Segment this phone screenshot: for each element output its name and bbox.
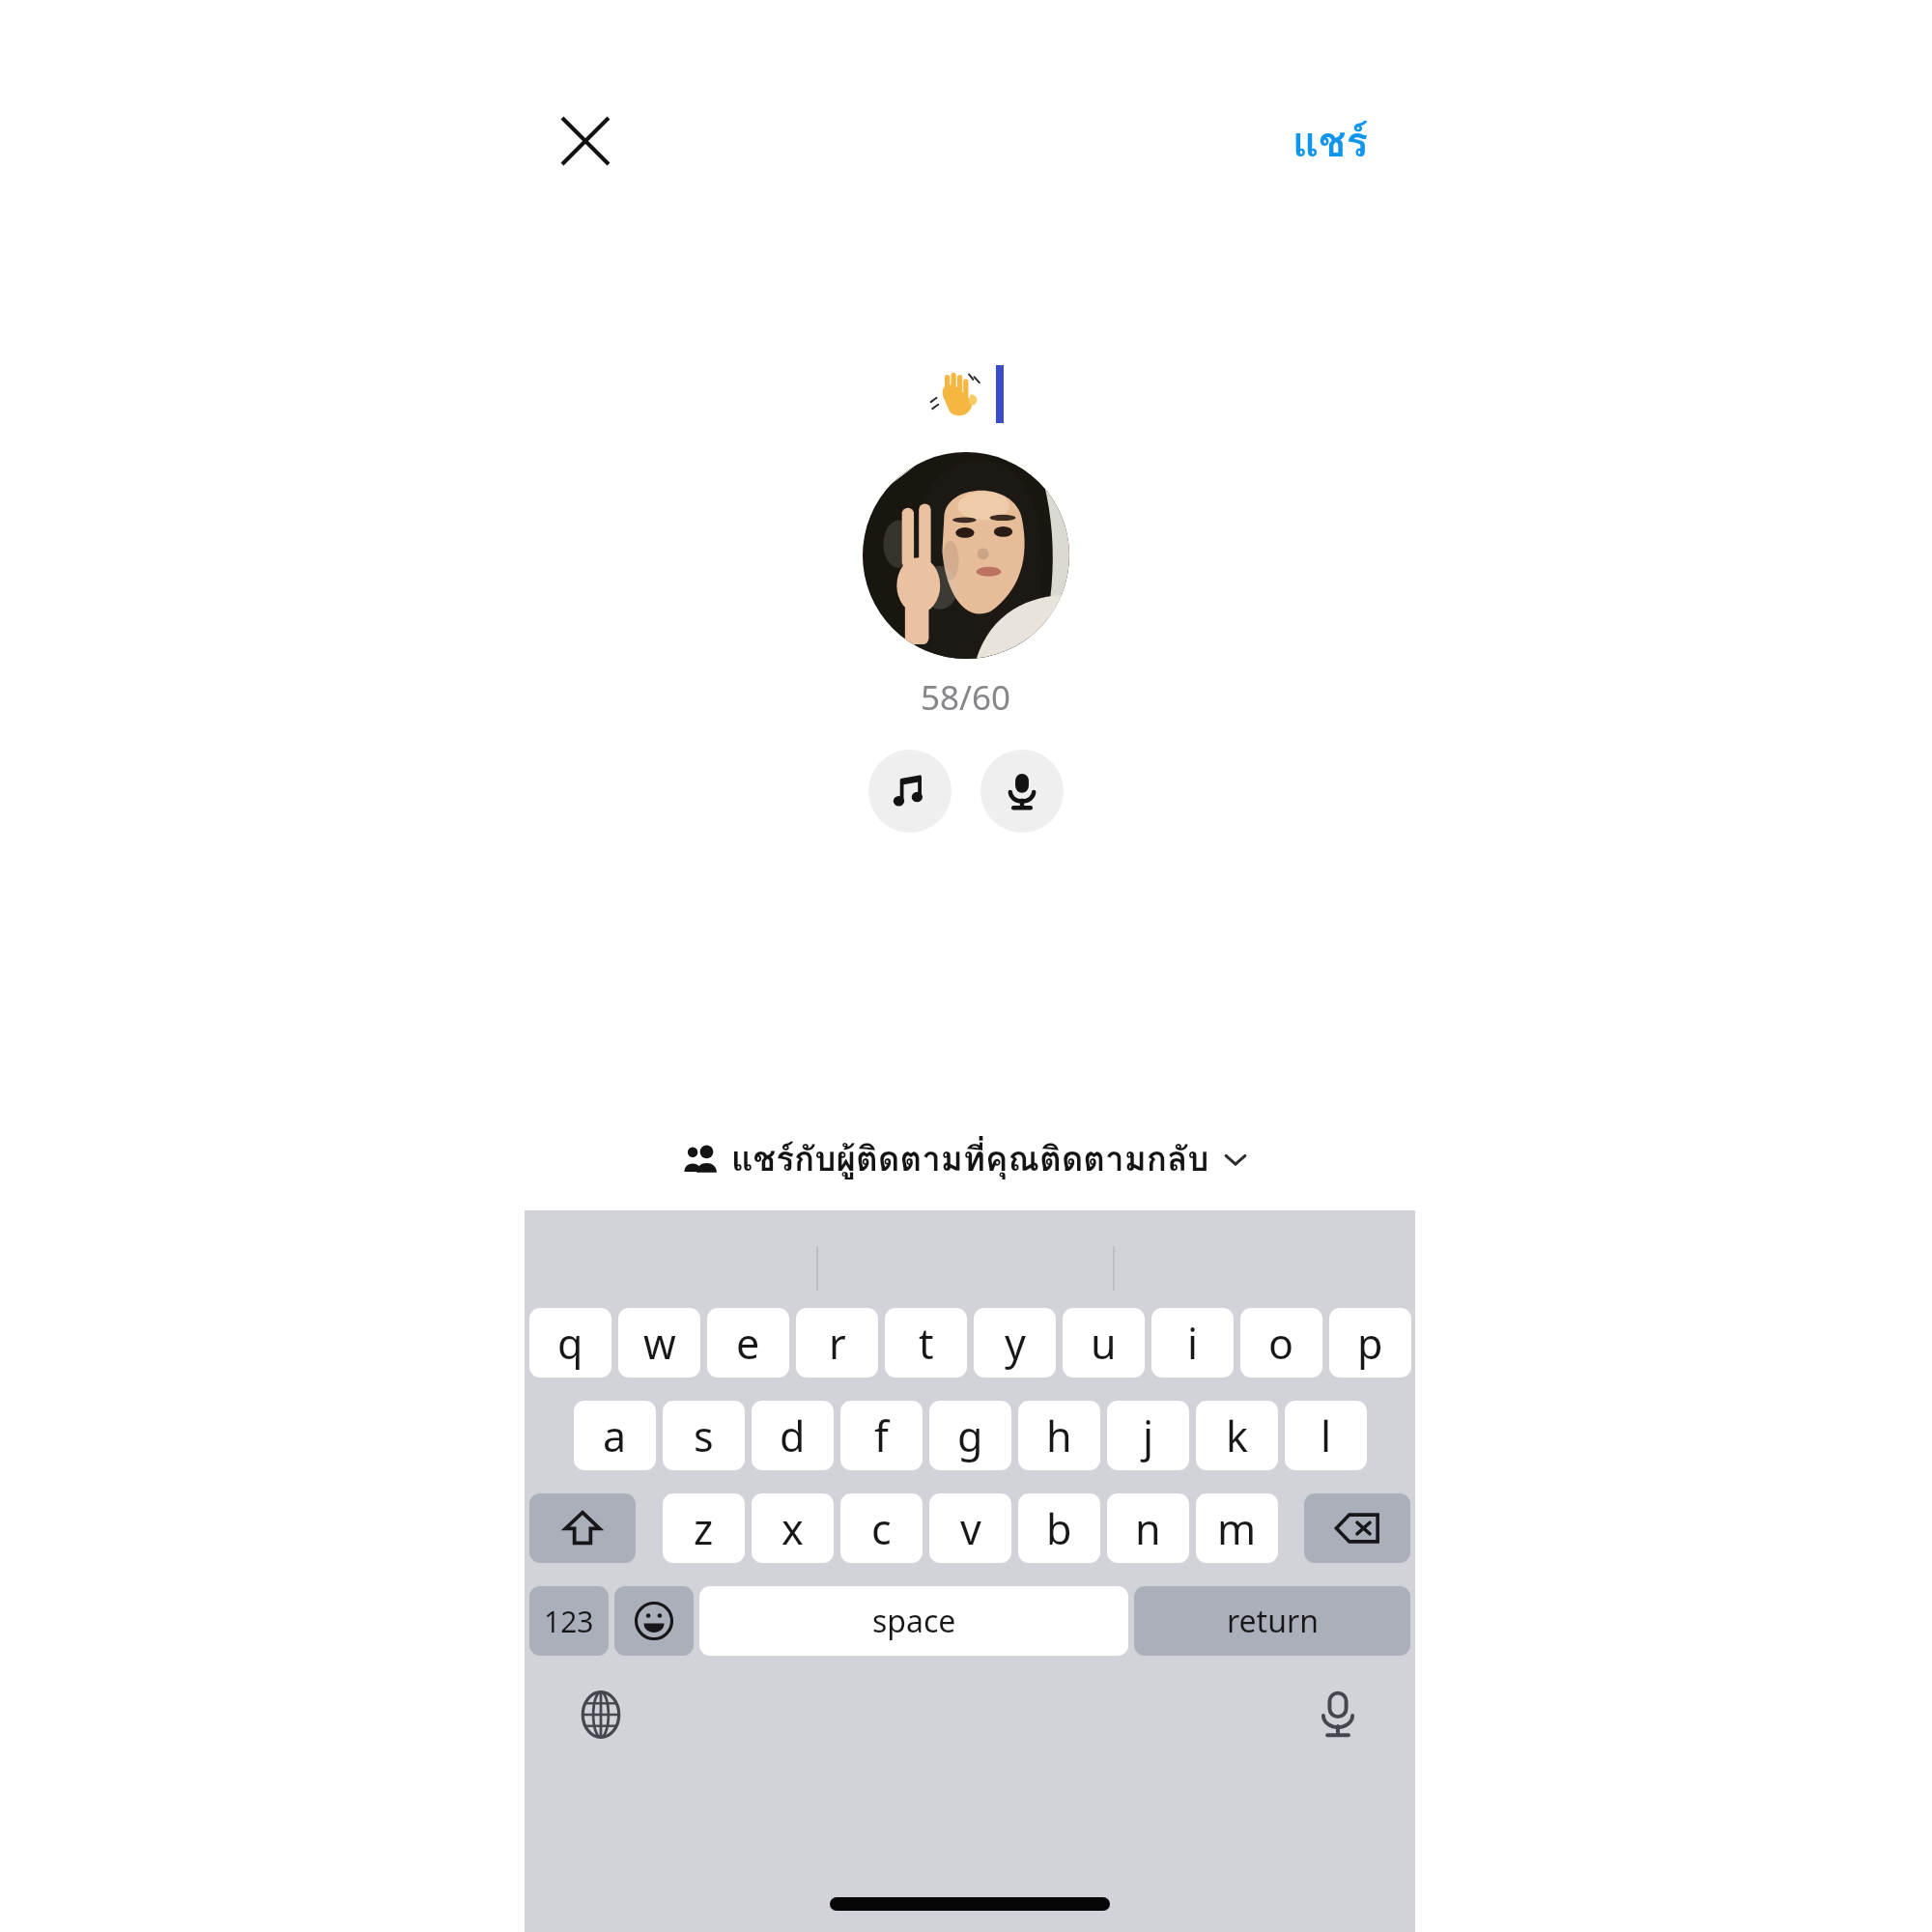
button[interactable] [893, 348, 1039, 440]
staticText: return [1227, 1600, 1319, 1642]
staticText: j [1143, 1407, 1154, 1464]
button[interactable]: b [1018, 1493, 1100, 1563]
button[interactable]: a [574, 1401, 656, 1470]
button[interactable]: Record voice [980, 750, 1064, 833]
button[interactable]: w [618, 1308, 700, 1378]
staticText: c [871, 1500, 892, 1557]
button[interactable]: 123 [529, 1586, 609, 1656]
button[interactable]: q [529, 1308, 611, 1378]
staticText: g [957, 1407, 983, 1464]
staticText: f [874, 1407, 889, 1464]
button[interactable]: d [752, 1401, 834, 1470]
button[interactable]: o [1240, 1308, 1322, 1378]
staticText: แชร์กับผู้ติดตามที่คุณติดตามกลับ [731, 1132, 1209, 1186]
button[interactable]: c [840, 1493, 923, 1563]
button[interactable]: p [1329, 1308, 1411, 1378]
staticText: y [1005, 1315, 1026, 1372]
button[interactable]: แชร์กับผู้ติดตามที่คุณติดตามกลับ [39, 1132, 1893, 1186]
staticText: s [694, 1407, 714, 1464]
button[interactable]: x [752, 1493, 834, 1563]
button[interactable]: s [663, 1401, 745, 1470]
button[interactable]: Backspace [1304, 1493, 1410, 1563]
button[interactable]: Emoji [614, 1586, 694, 1656]
button[interactable]: Add music [868, 750, 952, 833]
button[interactable]: t [885, 1308, 967, 1378]
staticText: z [694, 1500, 714, 1557]
staticText: 123 [544, 1602, 594, 1641]
button[interactable]: Dictation [1300, 1677, 1376, 1752]
staticText: a [603, 1407, 627, 1464]
staticText: h [1046, 1407, 1072, 1464]
button[interactable]: m [1196, 1493, 1278, 1563]
staticText: i [1187, 1315, 1199, 1372]
staticText: w [643, 1315, 676, 1372]
button[interactable]: u [1063, 1308, 1145, 1378]
staticText: d [780, 1407, 806, 1464]
button[interactable]: v [929, 1493, 1011, 1563]
button[interactable]: Close [551, 106, 620, 176]
button[interactable]: Shift [529, 1493, 636, 1563]
staticText: v [960, 1500, 981, 1557]
staticText: space [872, 1600, 956, 1642]
staticText: 58/60 [921, 674, 1011, 721]
staticText: k [1226, 1407, 1248, 1464]
staticText: m [1217, 1500, 1257, 1557]
button[interactable]: h [1018, 1401, 1100, 1470]
staticText: e [736, 1315, 760, 1372]
button[interactable]: space [699, 1586, 1128, 1656]
staticText: u [1091, 1315, 1117, 1372]
button[interactable]: แชร์ [1293, 110, 1369, 175]
button[interactable]: j [1107, 1401, 1189, 1470]
staticText: แชร์ [1293, 110, 1369, 175]
staticText: x [781, 1500, 804, 1557]
staticText: p [1357, 1315, 1383, 1372]
button[interactable]: g [929, 1401, 1011, 1470]
button[interactable]: k [1196, 1401, 1278, 1470]
button[interactable]: return [1134, 1586, 1410, 1656]
staticText: b [1046, 1500, 1072, 1557]
button[interactable]: r [796, 1308, 878, 1378]
staticText: t [919, 1315, 934, 1372]
button[interactable]: e [707, 1308, 789, 1378]
button[interactable]: y [974, 1308, 1056, 1378]
staticText: l [1321, 1407, 1332, 1464]
button[interactable] [863, 452, 1069, 659]
staticText: n [1135, 1500, 1161, 1557]
staticText: o [1268, 1315, 1294, 1372]
button[interactable]: f [840, 1401, 923, 1470]
button[interactable]: n [1107, 1493, 1189, 1563]
staticText: q [557, 1315, 583, 1372]
button[interactable]: l [1285, 1401, 1367, 1470]
button[interactable]: i [1151, 1308, 1234, 1378]
staticText: r [829, 1315, 846, 1372]
button[interactable]: Switch language [563, 1677, 639, 1752]
button[interactable]: z [663, 1493, 745, 1563]
